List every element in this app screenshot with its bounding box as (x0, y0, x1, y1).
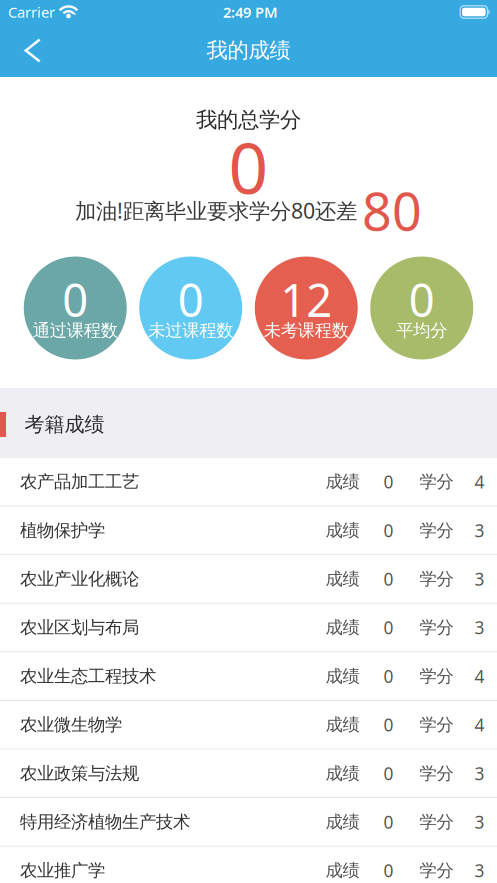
staticText: 植物保护学 (20, 520, 105, 541)
staticText: 学分 (419, 860, 453, 881)
staticText: 我的总学分 (196, 107, 301, 133)
staticText: 学分 (419, 520, 453, 541)
staticText: 成绩 (325, 568, 359, 590)
staticText: 3 (474, 810, 484, 833)
staticText: 未考课程数 (264, 320, 349, 341)
staticText: 学分 (419, 714, 453, 735)
staticText: 0 (409, 269, 435, 329)
staticText: 农产品加工工艺 (20, 471, 139, 492)
staticText: 农业产业化概论 (20, 568, 139, 590)
staticText: 0 (383, 810, 393, 833)
staticText: 学分 (419, 471, 453, 492)
staticText: 农业微生物学 (20, 714, 122, 735)
staticText: 成绩 (325, 666, 359, 687)
button[interactable]: Back (0, 24, 62, 77)
staticText: 平均分 (396, 320, 447, 341)
staticText: 学分 (419, 568, 453, 590)
staticText: 0 (383, 567, 393, 590)
staticText: 成绩 (325, 471, 359, 492)
staticText: 0 (383, 762, 393, 785)
staticText: 加油!距离毕业要求学分80还差 (75, 196, 357, 225)
staticText: 成绩 (325, 763, 359, 784)
staticText: 3 (474, 859, 484, 882)
staticText: 成绩 (325, 860, 359, 881)
staticText: 4 (474, 470, 484, 493)
staticText: 学分 (419, 617, 453, 638)
staticText: 0 (383, 470, 393, 493)
staticText: 0 (178, 269, 204, 329)
staticText: 成绩 (325, 811, 359, 833)
staticText: 成绩 (325, 520, 359, 541)
staticText: 0 (383, 713, 393, 736)
staticText: 特用经济植物生产技术 (20, 811, 190, 833)
staticText: 学分 (419, 811, 453, 833)
staticText: 12 (280, 269, 332, 329)
staticText: 通过课程数 (33, 320, 118, 341)
staticText: 我的成绩 (206, 37, 290, 64)
staticText: 学分 (419, 666, 453, 687)
staticText: 农业区划与布局 (20, 617, 139, 638)
staticText: 4 (474, 665, 484, 688)
staticText: 0 (62, 269, 88, 329)
staticText: 成绩 (325, 617, 359, 638)
staticText: 农业推广学 (20, 860, 105, 881)
staticText: 农业生态工程技术 (20, 666, 156, 687)
staticText: 0 (228, 121, 268, 213)
staticText: 2:49 PM (223, 2, 278, 22)
staticText: 3 (474, 567, 484, 590)
staticText: 80 (362, 176, 422, 245)
staticText: 0 (383, 616, 393, 639)
staticText: 3 (474, 762, 484, 785)
staticText: Carrier (8, 2, 55, 22)
staticText: 0 (383, 859, 393, 882)
staticText: 未过课程数 (148, 320, 233, 341)
staticText: 3 (474, 519, 484, 542)
staticText: 考籍成绩 (24, 412, 104, 437)
staticText: 4 (474, 713, 484, 736)
staticText: 成绩 (325, 714, 359, 735)
staticText: 学分 (419, 763, 453, 784)
staticText: 农业政策与法规 (20, 763, 139, 784)
staticText: 0 (383, 665, 393, 688)
staticText: 0 (383, 519, 393, 542)
staticText: 3 (474, 616, 484, 639)
